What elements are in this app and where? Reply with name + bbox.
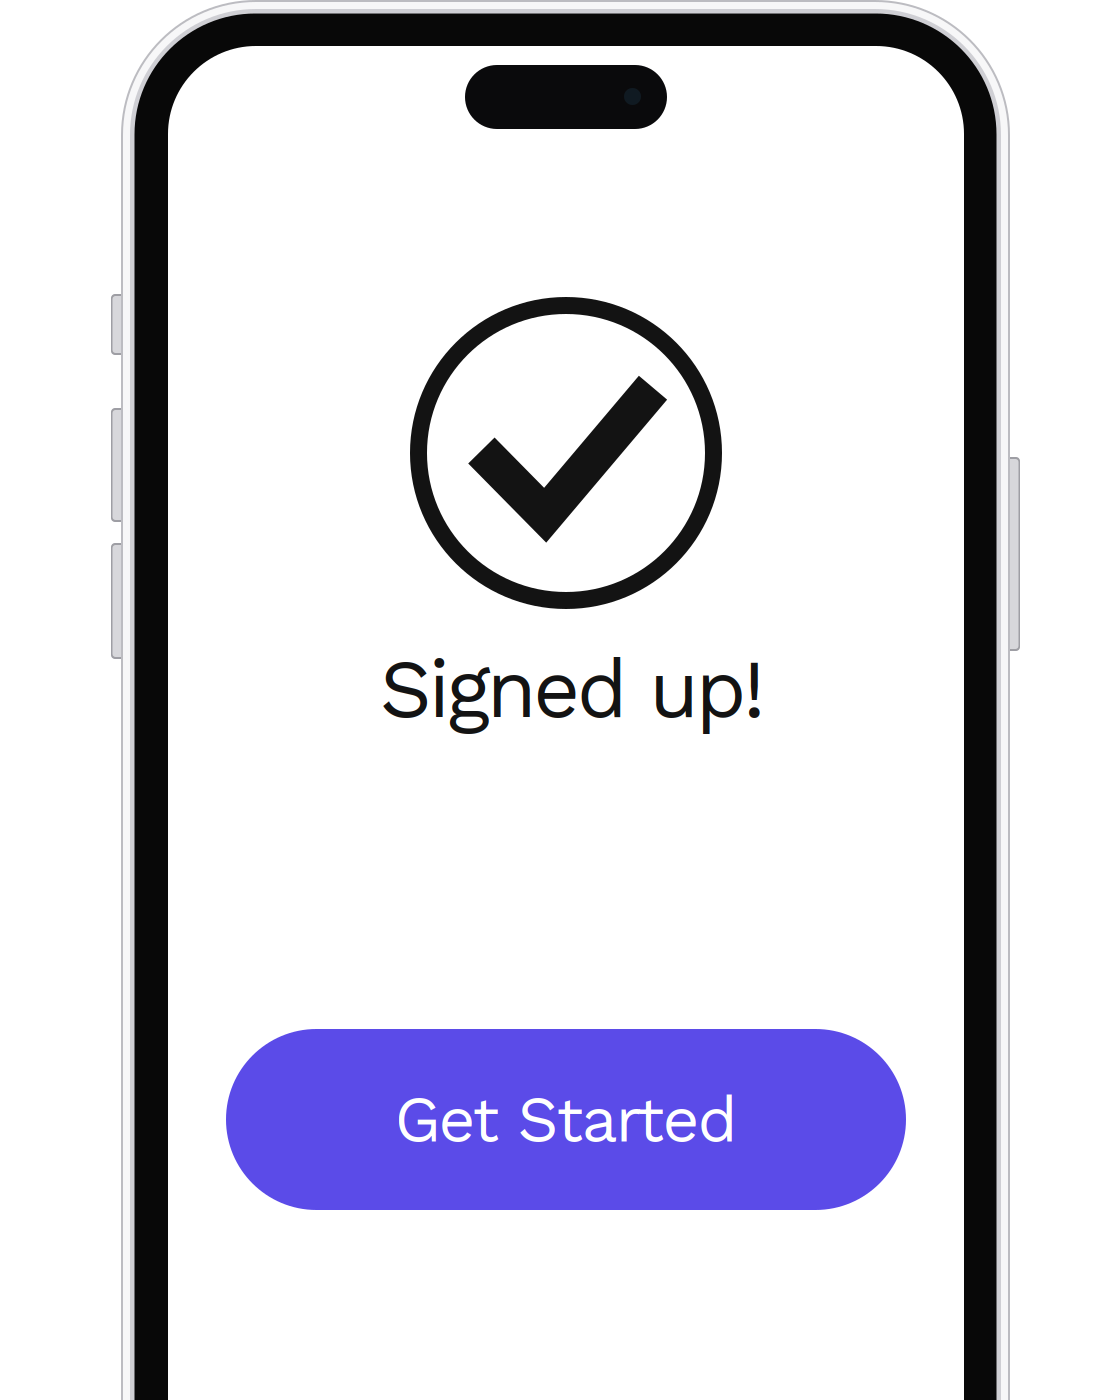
button[interactable]: Get Started [226, 1029, 906, 1210]
staticText: Get Started [394, 1082, 737, 1157]
staticText: Signed up! [380, 641, 765, 737]
